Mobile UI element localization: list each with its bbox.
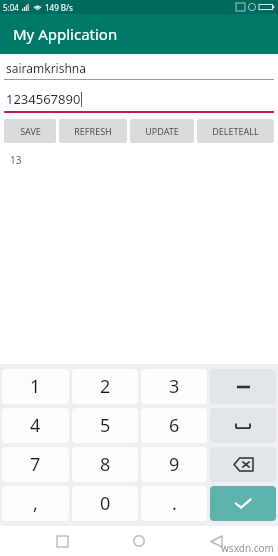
staticText: , (33, 491, 38, 516)
button[interactable]: 9 (141, 447, 207, 482)
button[interactable]: . (141, 486, 207, 521)
button[interactable]: 1 (2, 369, 69, 404)
button[interactable]: Enter (210, 486, 276, 521)
button[interactable]: DELETEALL (197, 119, 274, 143)
staticText: sairamkrishna (6, 60, 87, 76)
staticText: wsxdn.com (221, 541, 274, 555)
staticText: REFRESH (74, 125, 112, 137)
staticText: 3 (169, 374, 180, 399)
button[interactable]: SAVE (4, 119, 56, 143)
button[interactable]: Recent apps (47, 526, 77, 556)
button[interactable]: Dash (210, 369, 276, 404)
button[interactable]: 2 (72, 369, 138, 404)
button[interactable]: , (2, 486, 69, 521)
staticText: 1234567890 (6, 90, 81, 108)
button[interactable]: 4 (2, 408, 69, 443)
button[interactable]: Space (210, 408, 276, 443)
staticText: 6 (169, 413, 180, 438)
staticText: 5:04 (3, 2, 19, 13)
staticText: 4 (30, 413, 41, 438)
staticText: 7 (30, 452, 41, 477)
button[interactable]: 1234567890 (4, 90, 274, 113)
staticText: SAVE (20, 125, 41, 137)
staticText: . (172, 491, 177, 516)
staticText: 1 (30, 374, 41, 399)
staticText: DELETEALL (212, 125, 259, 137)
staticText: UPDATE (145, 125, 179, 137)
button[interactable]: REFRESH (59, 119, 127, 143)
button[interactable]: 5 (72, 408, 138, 443)
button[interactable]: UPDATE (130, 119, 194, 143)
button[interactable]: 0 (72, 486, 138, 521)
staticText: 13 (10, 153, 22, 167)
button[interactable]: Home (124, 526, 154, 556)
button[interactable]: 7 (2, 447, 69, 482)
staticText: 2 (100, 374, 111, 399)
staticText: 149 B/s (45, 2, 73, 13)
button[interactable]: sairamkrishna (4, 60, 274, 80)
button[interactable]: Backspace (210, 447, 276, 482)
button[interactable]: 6 (141, 408, 207, 443)
button[interactable]: 8 (72, 447, 138, 482)
button[interactable]: 3 (141, 369, 207, 404)
staticText: 0 (100, 491, 111, 516)
staticText: 9 (169, 452, 180, 477)
staticText: 5 (100, 413, 111, 438)
staticText: 8 (100, 452, 111, 477)
staticText: My Application (13, 24, 118, 44)
button[interactable]: Back (201, 526, 231, 556)
